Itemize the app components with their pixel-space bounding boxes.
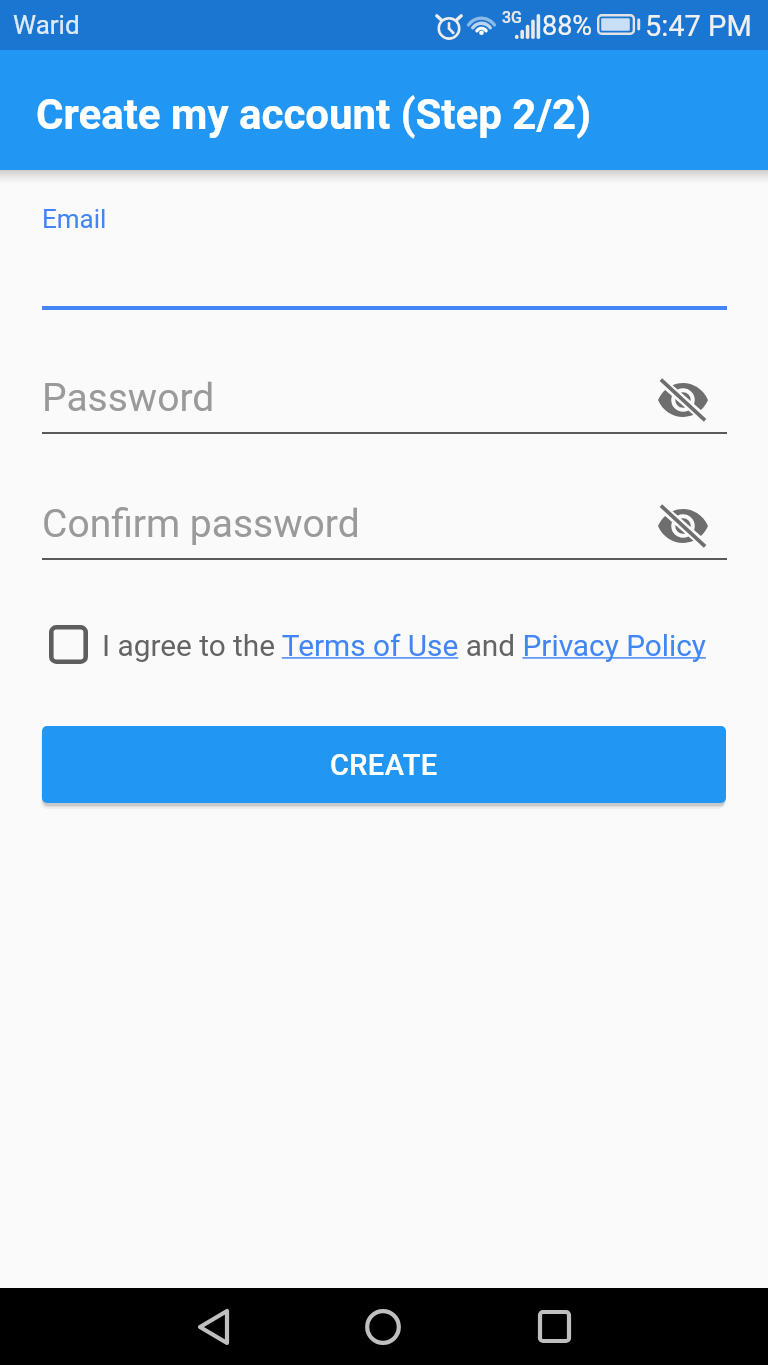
button[interactable]: Confirm password field: [42, 491, 727, 560]
staticText: CREATE: [330, 748, 438, 782]
button[interactable]: CREATE: [42, 726, 726, 803]
button[interactable]: Toggle password visibility: [649, 497, 717, 555]
staticText: Create my account (Step 2/2): [36, 90, 592, 139]
button[interactable]: Toggle password visibility: [649, 371, 717, 429]
staticText: Email: [42, 204, 107, 234]
staticText: 88%: [542, 10, 593, 42]
button[interactable]: Password field: [42, 365, 727, 434]
staticText: 5:47 PM: [645, 9, 752, 43]
button[interactable]: I agree to the Terms of Use and Privacy …: [42, 616, 726, 672]
button[interactable]: Home: [333, 1288, 433, 1365]
staticText: I agree to the Terms of Use and Privacy …: [102, 628, 706, 663]
button[interactable]: Email field: [42, 196, 727, 310]
staticText: Confirm password: [42, 501, 360, 547]
staticText: 3G: [502, 8, 522, 27]
staticText: Password: [42, 375, 215, 421]
button[interactable]: Back: [163, 1288, 263, 1365]
staticText: Warid: [13, 10, 80, 40]
button[interactable]: Recents: [504, 1288, 604, 1365]
